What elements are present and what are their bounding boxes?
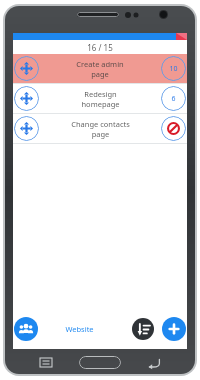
staticText: 16 / 15 (87, 42, 113, 53)
button[interactable]: Reorder (14, 116, 39, 141)
staticText: Website (65, 324, 94, 334)
button[interactable]: Reorder (13, 84, 187, 113)
button[interactable]: Reorder (13, 114, 187, 143)
button[interactable]: Add task (162, 317, 186, 341)
staticText: 6 (171, 94, 176, 104)
button[interactable]: Reorder (13, 54, 187, 83)
staticText: Create admin page (76, 59, 124, 79)
button[interactable]: Reorder (14, 56, 39, 81)
button[interactable]: Team members (14, 317, 38, 341)
staticText: Redesign homepage (81, 89, 120, 109)
button[interactable]: Sort (132, 318, 154, 340)
staticText: Change contacts page (71, 119, 130, 139)
button[interactable]: Estimate (161, 86, 186, 111)
staticText: 10 (169, 64, 178, 74)
button[interactable]: Estimate (161, 56, 186, 81)
button[interactable]: Reorder (14, 86, 39, 111)
button[interactable]: Website (61, 321, 98, 337)
button[interactable]: Estimate (161, 116, 186, 141)
